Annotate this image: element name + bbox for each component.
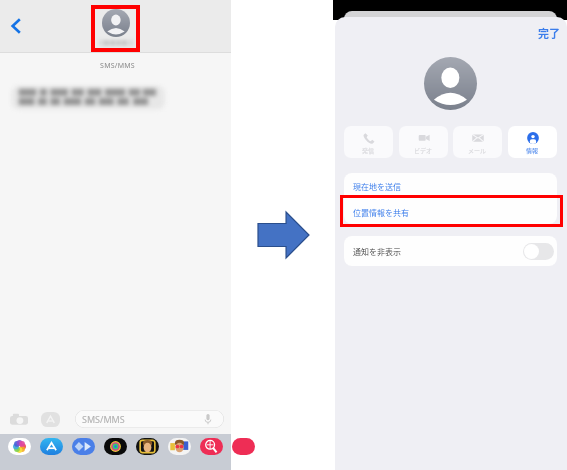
button[interactable]: App icon 0: [8, 438, 31, 455]
button[interactable]: App icon 6: [200, 438, 223, 455]
staticText: 位置情報を共有: [353, 207, 409, 219]
button[interactable]: App icon 4: [136, 438, 159, 455]
button[interactable]: 完了: [534, 22, 564, 44]
button[interactable]: SMS/MMS: [75, 410, 224, 428]
button[interactable]: App icon 3: [104, 438, 127, 455]
button[interactable]: Camera: [10, 413, 28, 427]
button[interactable]: App icon 2: [72, 438, 95, 455]
staticText: 発信: [362, 146, 375, 155]
button[interactable]: 位置情報を共有: [344, 198, 557, 224]
button[interactable]: 現在地を送信: [344, 173, 557, 198]
button[interactable]: Hide alerts toggle: [523, 243, 554, 260]
button[interactable]: ビデオ: [399, 126, 448, 158]
button[interactable]: App icon 1: [40, 438, 63, 455]
staticText: SMS/MMS: [82, 413, 125, 425]
button[interactable]: 情報: [508, 126, 557, 158]
staticText: ビデオ: [414, 146, 433, 155]
button[interactable]: メール: [453, 126, 502, 158]
staticText: メール: [468, 146, 487, 155]
staticText: 情報: [526, 146, 539, 155]
button[interactable]: App icon 5: [168, 438, 191, 455]
staticText: SMS/MMS: [2, 61, 233, 71]
button[interactable]: App Store: [41, 412, 60, 427]
staticText: 完了: [538, 25, 560, 41]
staticText: 通知を非表示: [353, 246, 401, 258]
button[interactable]: Back: [4, 14, 28, 38]
button[interactable]: App icon 7: [232, 438, 255, 455]
staticText: 現在地を送信: [353, 181, 401, 193]
button[interactable]: 発信: [344, 126, 393, 158]
